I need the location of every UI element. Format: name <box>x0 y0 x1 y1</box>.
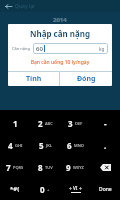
staticText: 3 <box>68 118 73 129</box>
button[interactable]: 8 <box>30 156 60 178</box>
staticText: GHI <box>15 143 23 148</box>
button[interactable]: Backspace <box>90 156 120 178</box>
staticText: MNO <box>74 143 84 148</box>
staticText: Tính <box>26 74 42 84</box>
staticText: PQRS <box>13 165 24 170</box>
button[interactable]: 1 <box>0 113 30 134</box>
staticText: 8 <box>38 162 43 173</box>
staticText: JKL <box>46 143 52 148</box>
staticText: + <box>47 187 50 192</box>
staticText: Cân nặng <box>12 46 30 51</box>
staticText: 2 <box>38 118 43 129</box>
button[interactable]: Tính <box>8 72 59 86</box>
staticText: 1 <box>13 118 18 129</box>
button[interactable]: 7 <box>0 156 30 178</box>
button[interactable]: Done <box>90 178 120 200</box>
button[interactable]: - <box>90 113 120 134</box>
staticText: TUV <box>45 165 53 170</box>
button[interactable]: 0 <box>30 178 60 200</box>
staticText: VI <box>73 185 78 191</box>
button[interactable]: 3 <box>60 113 90 134</box>
button[interactable]: 6 <box>60 134 90 156</box>
staticText: kg <box>99 46 105 52</box>
staticText: . <box>104 140 107 151</box>
button[interactable]: Space <box>60 178 90 200</box>
button[interactable]: Đóng <box>60 72 112 86</box>
button[interactable]: *#( <box>0 178 30 200</box>
staticText: DEF <box>75 121 83 126</box>
staticText: Nhập cân nặng <box>8 28 112 39</box>
button[interactable]: 4 <box>0 134 30 156</box>
staticText: WXYZ <box>73 165 84 170</box>
button[interactable]: 2 <box>30 113 60 134</box>
staticText: 60 <box>36 45 43 53</box>
staticText: Quay lại <box>15 3 35 10</box>
button[interactable]: Quay lại <box>3 1 13 11</box>
staticText: 5 <box>39 140 44 151</box>
staticText: Đóng <box>77 74 96 84</box>
staticText: - <box>104 118 107 129</box>
staticText: ABC <box>45 121 53 126</box>
staticText: 9 <box>66 162 71 173</box>
button[interactable]: 5 <box>30 134 60 156</box>
staticText: 0 <box>40 184 45 195</box>
staticText: *#( <box>10 185 20 193</box>
staticText: 6 <box>67 140 72 151</box>
button[interactable]: . <box>90 134 120 156</box>
staticText: 7 <box>6 162 11 173</box>
staticText: Bạn cần uống 10 ly/ngày <box>8 59 112 66</box>
staticText: 4 <box>8 140 13 151</box>
staticText: Done <box>99 186 112 193</box>
button[interactable]: 9 <box>60 156 90 178</box>
staticText: 2014 <box>53 16 67 24</box>
button[interactable]: 60 <box>33 43 108 54</box>
